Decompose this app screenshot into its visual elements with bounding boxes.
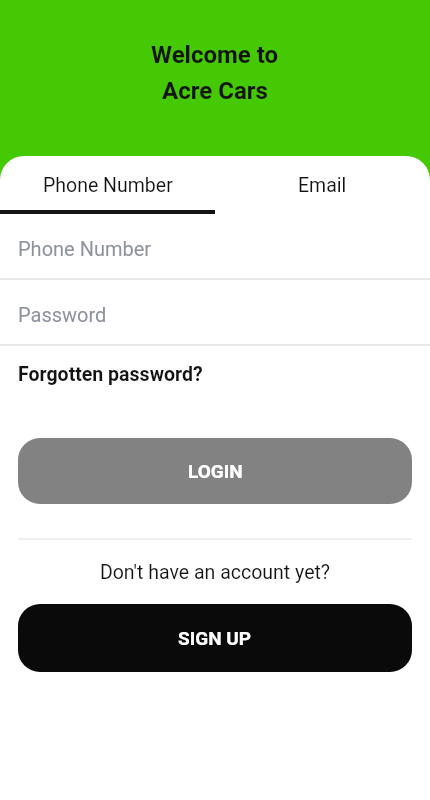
staticText: Phone Number — [18, 237, 152, 260]
staticText: SIGN UP — [178, 627, 252, 649]
button[interactable]: Phone Number — [0, 214, 430, 280]
staticText: Password — [18, 303, 107, 326]
staticText: Email — [298, 174, 347, 197]
staticText: LOGIN — [188, 460, 243, 482]
button[interactable]: Phone Number — [0, 156, 215, 210]
button[interactable]: SIGN UP — [18, 604, 412, 672]
staticText: Welcome to — [151, 41, 279, 69]
button[interactable]: Email — [215, 156, 430, 210]
staticText: Acre Cars — [162, 77, 268, 105]
button[interactable]: Password — [0, 280, 430, 346]
staticText: Phone Number — [43, 174, 173, 197]
button[interactable]: LOGIN — [18, 438, 412, 504]
button[interactable]: Forgotten password? — [18, 363, 203, 386]
staticText: Don't have an account yet? — [0, 561, 430, 584]
